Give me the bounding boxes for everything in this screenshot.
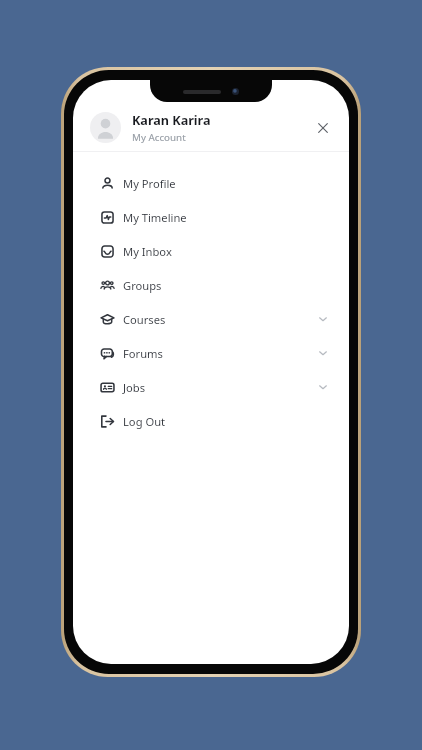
button[interactable]: Jobs — [73, 370, 349, 404]
staticText: Jobs — [123, 380, 146, 395]
staticText: Karan Karira — [132, 112, 211, 129]
staticText: My Profile — [123, 176, 176, 191]
staticText: Forums — [123, 346, 163, 361]
button[interactable]: Profile picture — [90, 112, 121, 143]
staticText: Groups — [123, 278, 162, 293]
staticText: My Timeline — [123, 210, 187, 225]
button[interactable]: Close — [306, 111, 340, 145]
staticText: My Account — [132, 131, 186, 144]
button[interactable]: My Profile — [73, 166, 349, 200]
button[interactable]: Courses — [73, 302, 349, 336]
button[interactable]: Log Out — [73, 404, 349, 438]
button[interactable]: Forums — [73, 336, 349, 370]
staticText: Log Out — [123, 414, 166, 429]
button[interactable]: Groups — [73, 268, 349, 302]
button[interactable]: My Inbox — [73, 234, 349, 268]
staticText: My Inbox — [123, 244, 172, 259]
staticText: Courses — [123, 312, 166, 327]
button[interactable]: My Timeline — [73, 200, 349, 234]
